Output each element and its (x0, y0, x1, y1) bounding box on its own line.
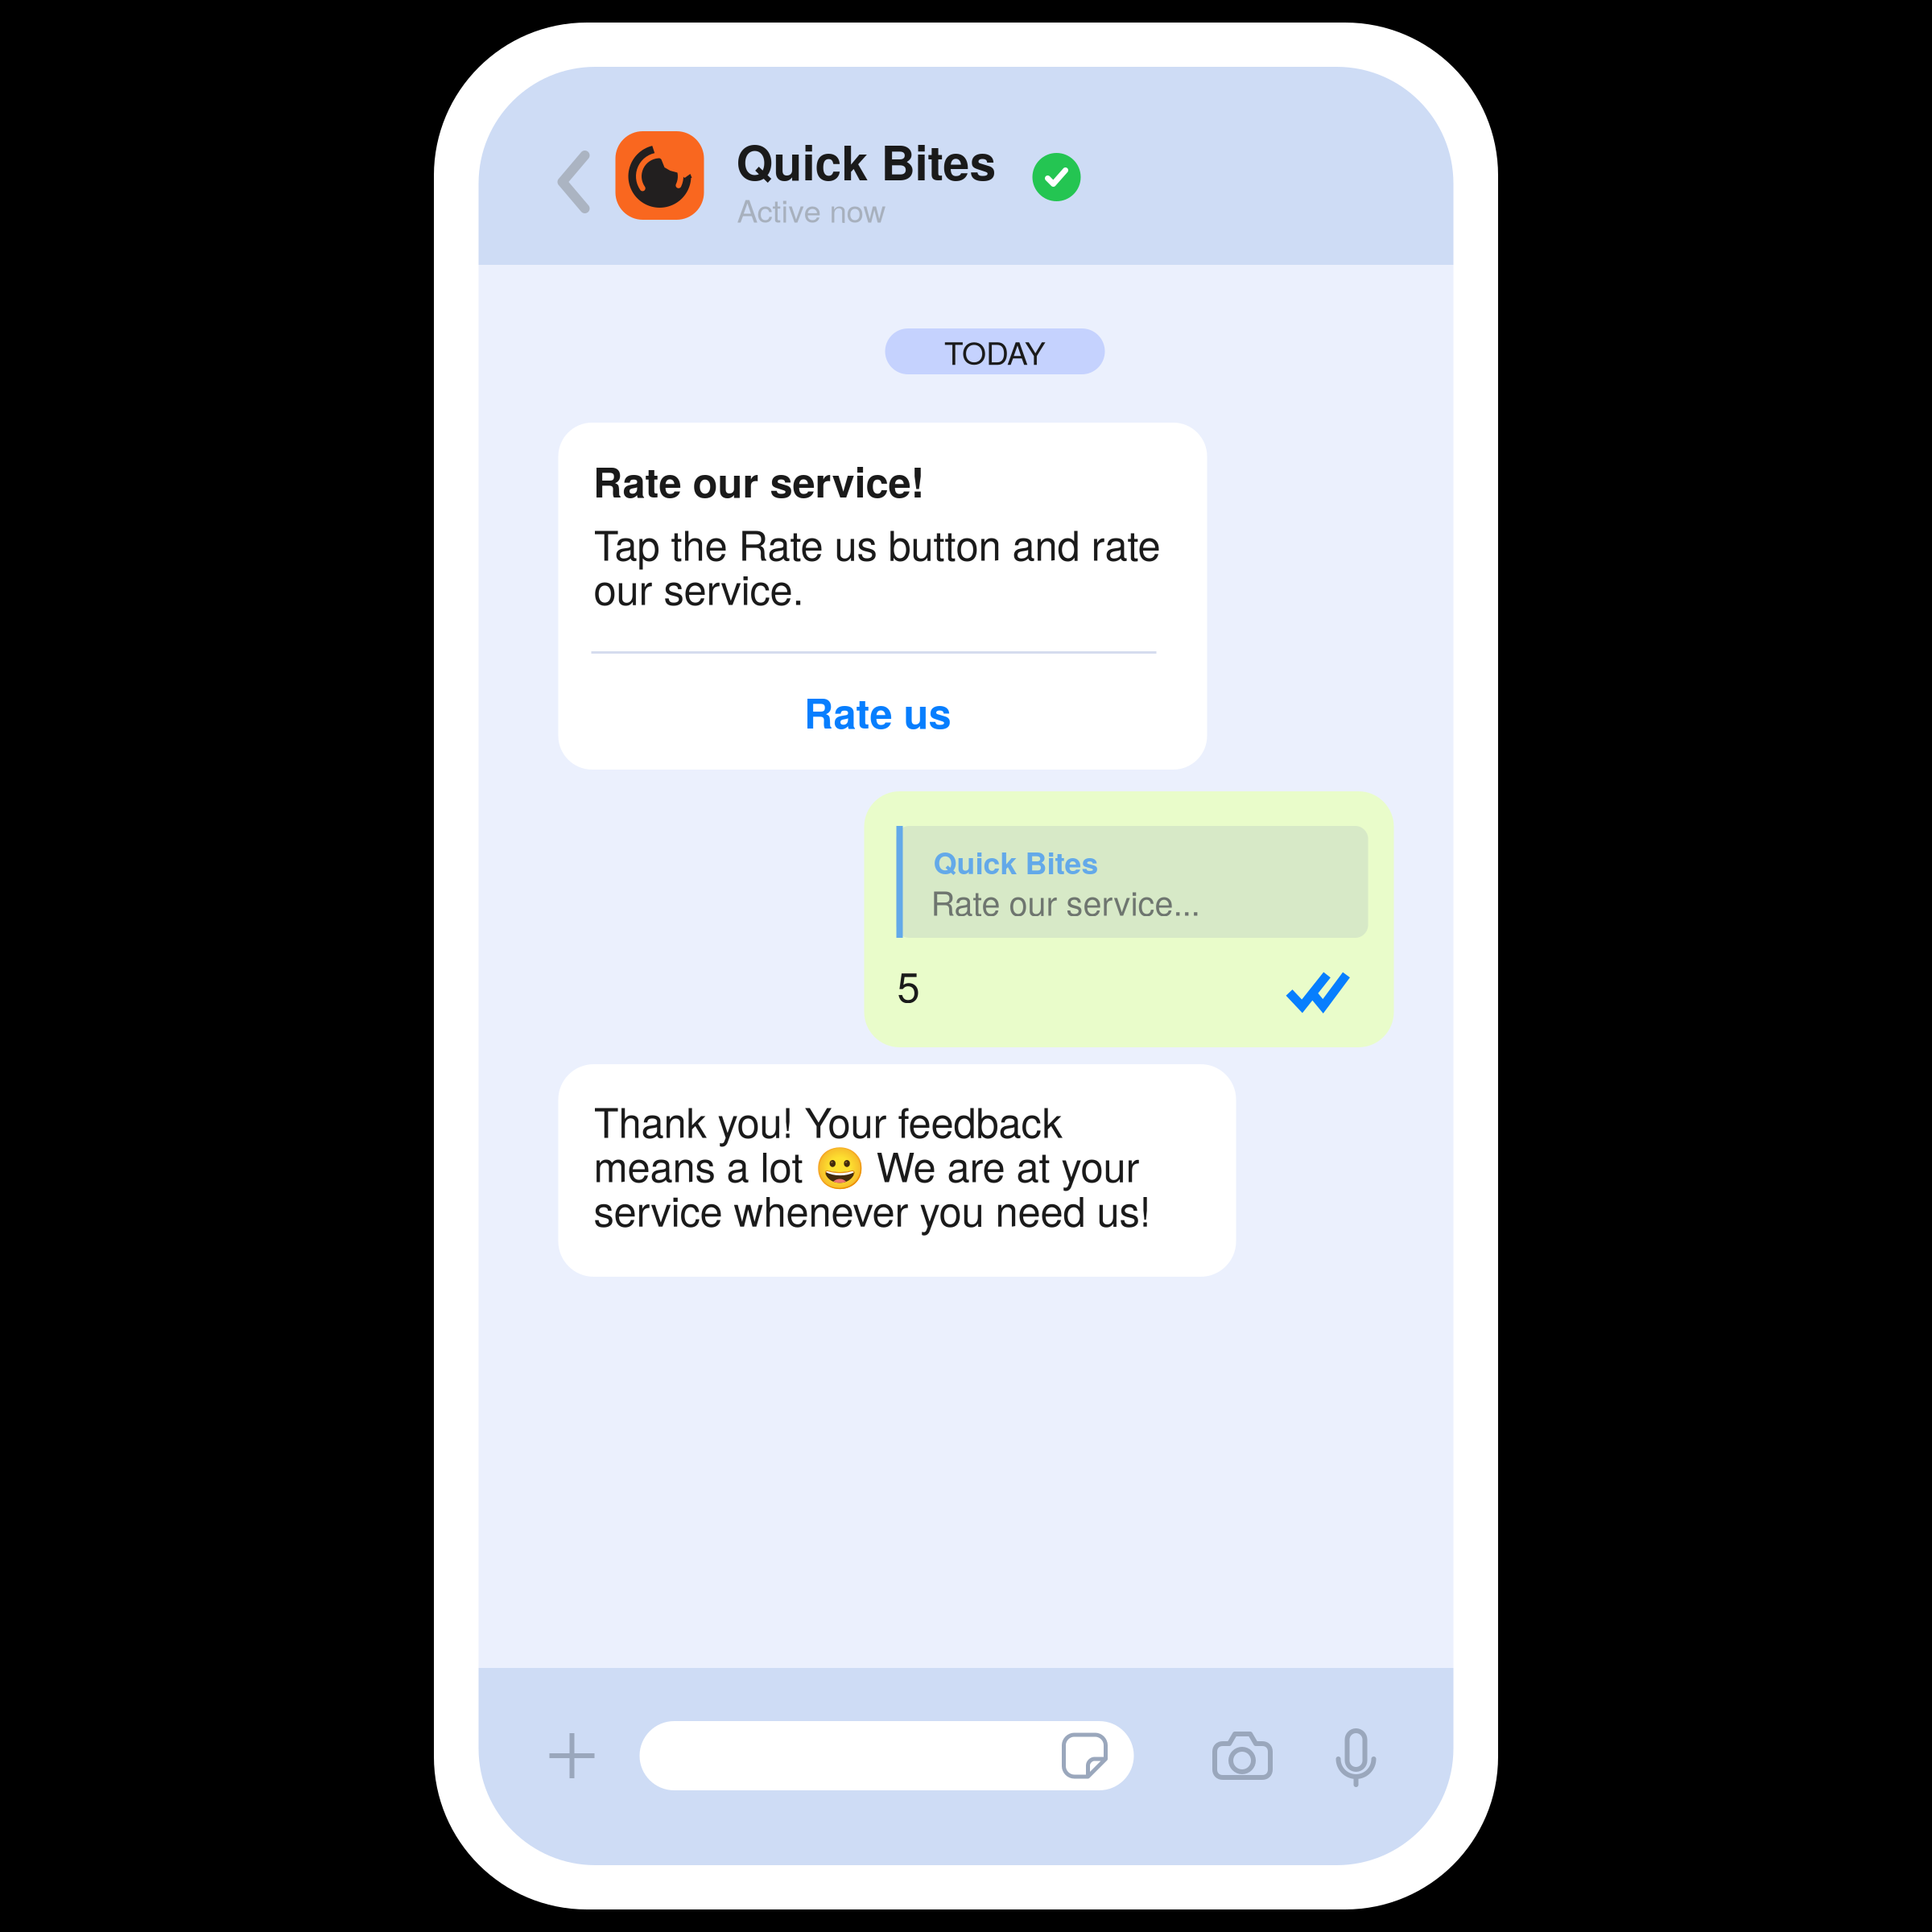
staticText: Thank you! Your feedback means a lot 😀 W… (594, 1098, 1151, 1231)
staticText: 5 (897, 956, 920, 1014)
button[interactable]: Camera (1204, 1717, 1281, 1794)
staticText: Rate our service! (593, 452, 925, 510)
staticText: Quick Bites (933, 840, 1098, 883)
staticText: Rate our service... (931, 877, 1200, 925)
staticText: Quick Bites (736, 127, 996, 195)
staticText: Tap the Rate us button and rate our serv… (594, 521, 1160, 610)
staticText: Active now (737, 187, 886, 231)
button[interactable]: Stickers (1050, 1721, 1119, 1790)
button[interactable]: Quick Bites profile (615, 131, 704, 220)
button[interactable]: Voice message (1317, 1717, 1395, 1794)
button[interactable]: Add attachment (533, 1717, 611, 1794)
button[interactable]: Back (512, 133, 596, 229)
button[interactable]: Rate us (558, 654, 1207, 770)
staticText: Rate us (804, 683, 951, 741)
staticText: TODAY (944, 329, 1046, 374)
